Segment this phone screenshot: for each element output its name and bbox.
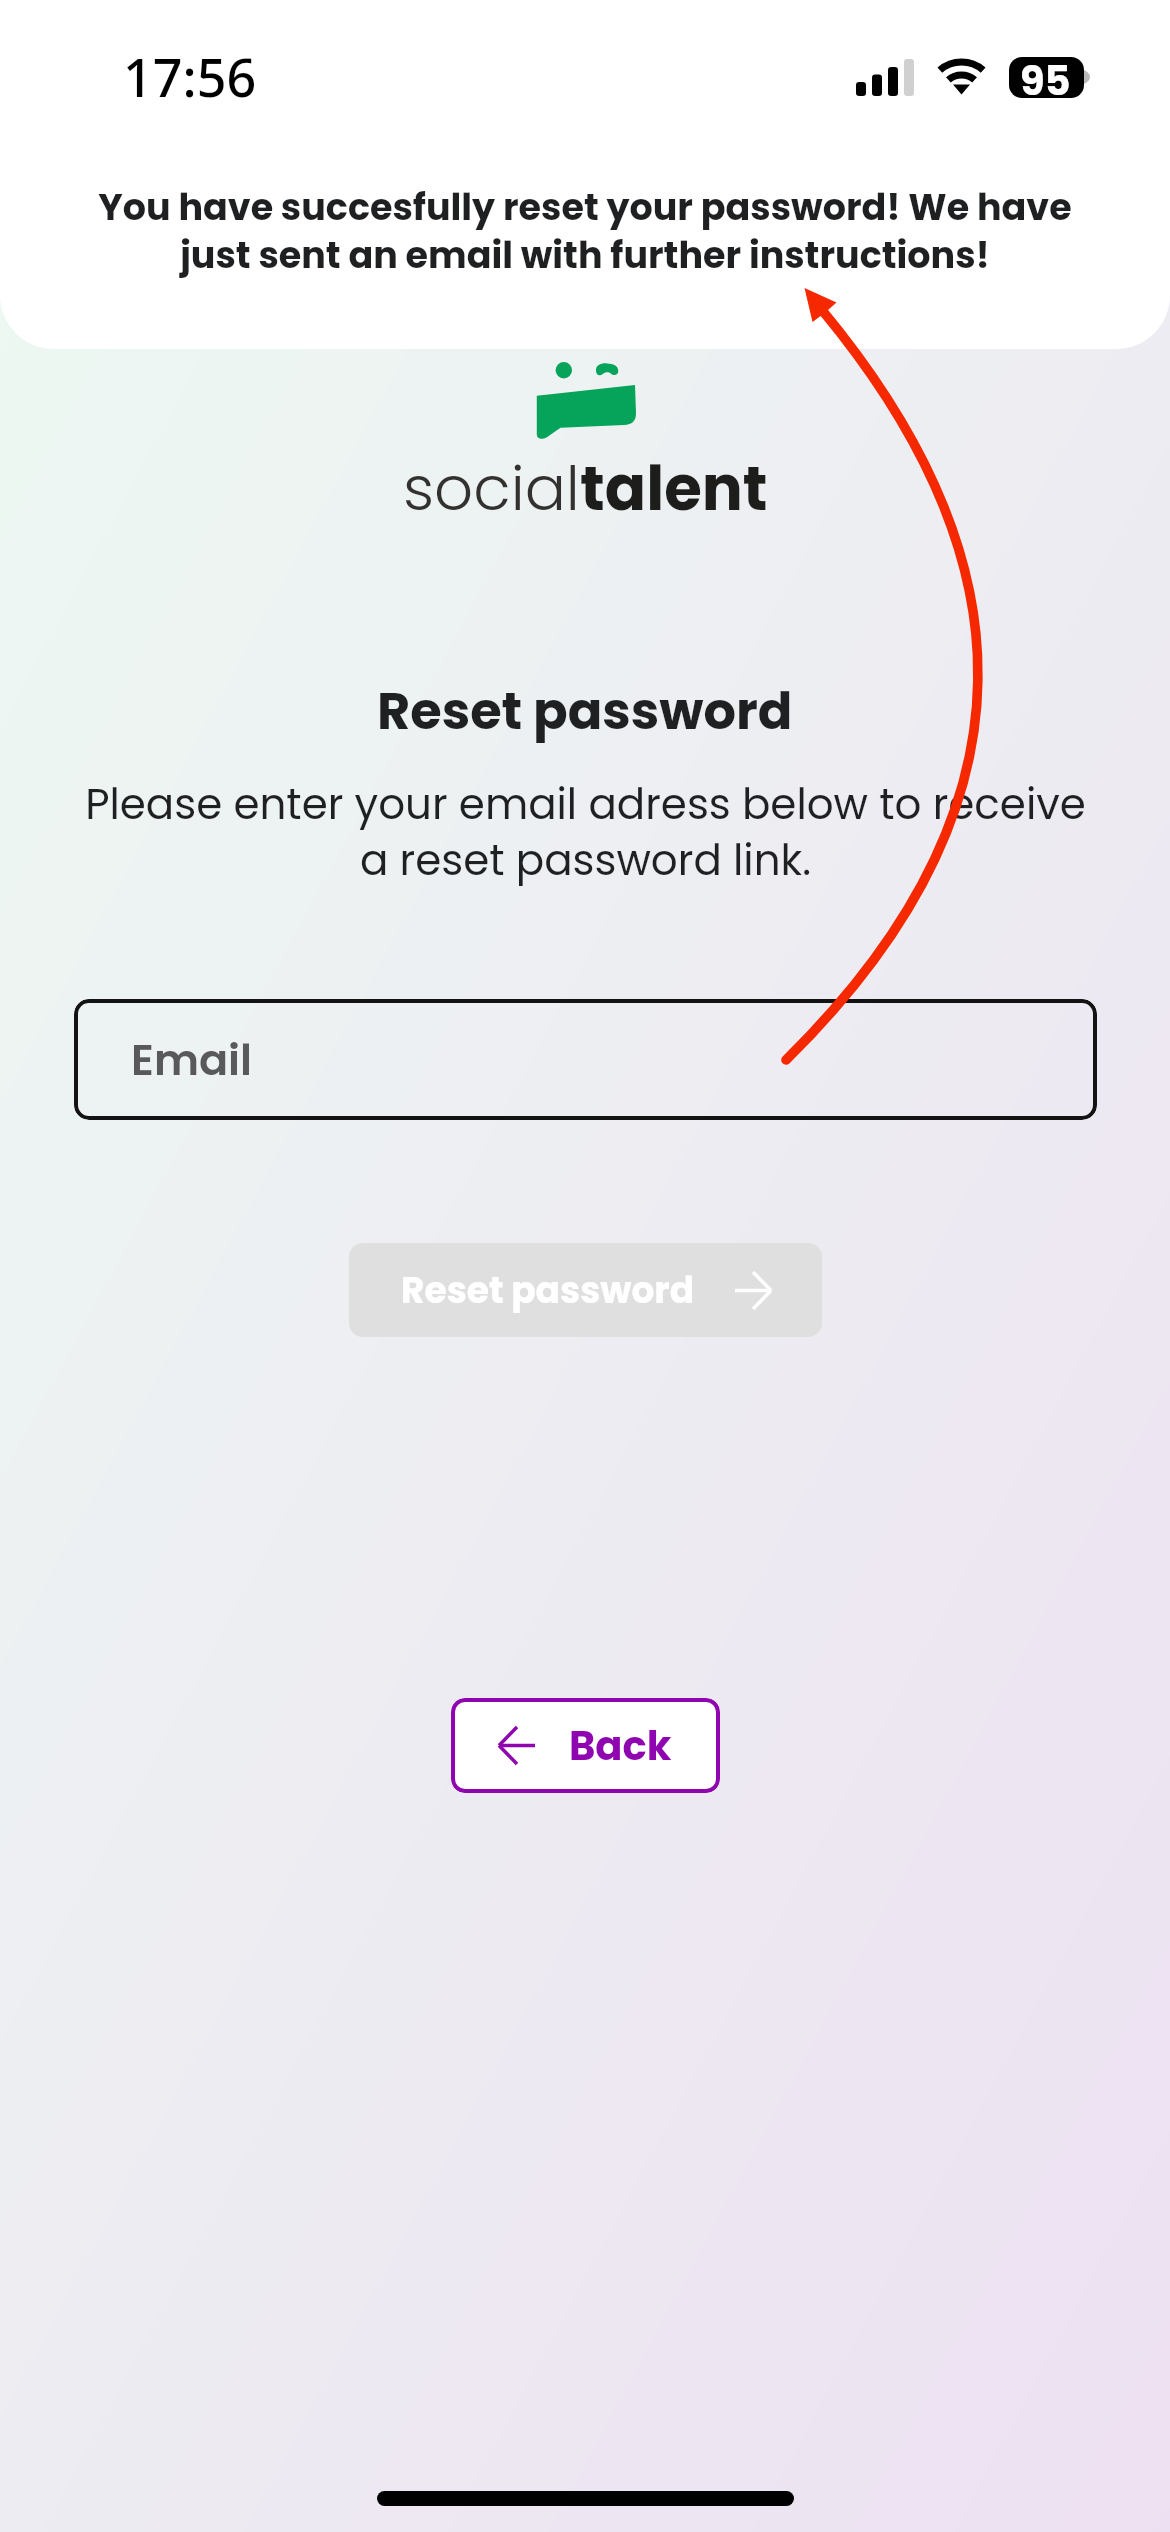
staticText: Email [131,1030,253,1090]
staticText: 95 [1020,53,1071,97]
button[interactable]: Back [451,1698,720,1793]
button[interactable]: Email [74,999,1097,1120]
staticText: You have succesfully reset your password… [85,182,1085,281]
other: Annotation arrow pointing at the toast m… [0,0,1170,2532]
button[interactable]: 17:56 [0,0,1170,349]
staticText: talent [580,446,768,531]
staticText: 17:56 [123,41,257,112]
button[interactable]: Reset password [349,1243,822,1337]
staticText: Back [569,1718,672,1774]
staticText: Please enter your email adress below to … [73,775,1098,890]
staticText: Reset password [401,1265,695,1315]
staticText: Reset password [377,675,793,746]
other: SocialTalent logo [536,360,636,442]
staticText: social [403,446,580,531]
